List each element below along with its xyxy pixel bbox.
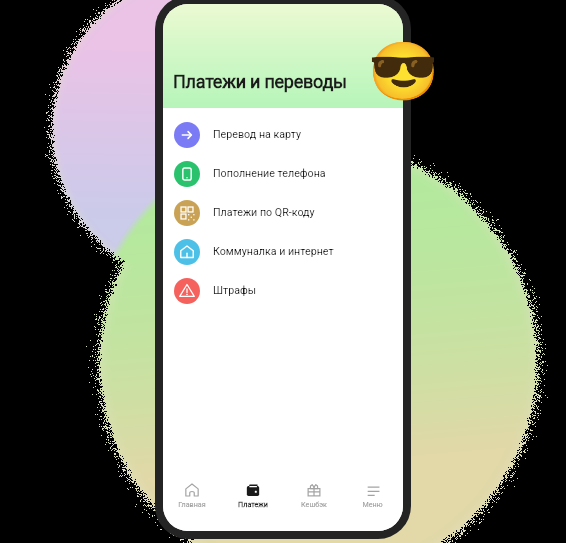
staticText: Штрафы [213,284,257,297]
button[interactable]: Штрафы [163,271,403,310]
button[interactable]: Меню [344,469,401,508]
button[interactable]: Главная [163,469,222,508]
staticText: Главная [178,500,206,508]
button[interactable]: Коммуналка и интернет [163,232,403,271]
button[interactable]: Платежи по QR-коду [163,193,403,232]
staticText: Кешбэк [301,500,327,508]
staticText: Платежи по QR-коду [213,206,315,219]
staticText: Коммуналка и интернет [213,245,334,258]
button[interactable]: Пополнение телефона [163,154,403,193]
staticText: 😎 [368,38,434,104]
staticText: Платежи [238,500,268,508]
button[interactable]: Перевод на карту [163,115,403,154]
staticText: Платежи и переводы [173,71,347,92]
staticText: Пополнение телефона [213,167,326,180]
button[interactable]: Кешбэк [283,469,344,508]
staticText: Перевод на карту [213,128,301,141]
button[interactable]: Платежи [222,469,283,508]
staticText: Меню [362,500,383,508]
